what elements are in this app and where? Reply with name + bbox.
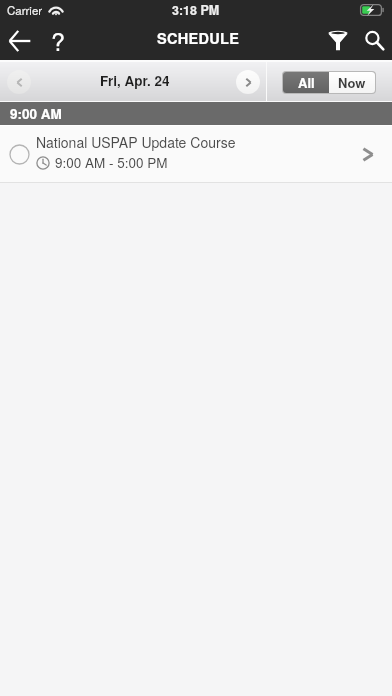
button[interactable]: Search	[356, 21, 392, 60]
button[interactable]: Now	[329, 72, 375, 93]
button[interactable]: National USPAP Update Course	[0, 125, 392, 183]
staticText: Fri, Apr. 24	[100, 71, 170, 90]
button[interactable]: Filter	[319, 21, 356, 60]
staticText: Now	[338, 73, 366, 92]
staticText: All	[298, 73, 315, 92]
staticText: 9:00 AM - 5:00 PM	[55, 153, 168, 172]
staticText: SCHEDULE	[157, 28, 240, 49]
staticText: National USPAP Update Course	[36, 132, 236, 152]
staticText: 9:00 AM	[10, 104, 62, 123]
button[interactable]: Help	[39, 21, 76, 60]
staticText: 3:18 PM	[172, 1, 220, 19]
button[interactable]: Previous day	[0, 62, 38, 102]
staticText: Carrier	[7, 2, 43, 18]
staticText: ?	[51, 22, 65, 58]
button[interactable]: Back	[0, 21, 39, 60]
button[interactable]: All	[283, 72, 329, 93]
button[interactable]: Next day	[230, 62, 266, 102]
